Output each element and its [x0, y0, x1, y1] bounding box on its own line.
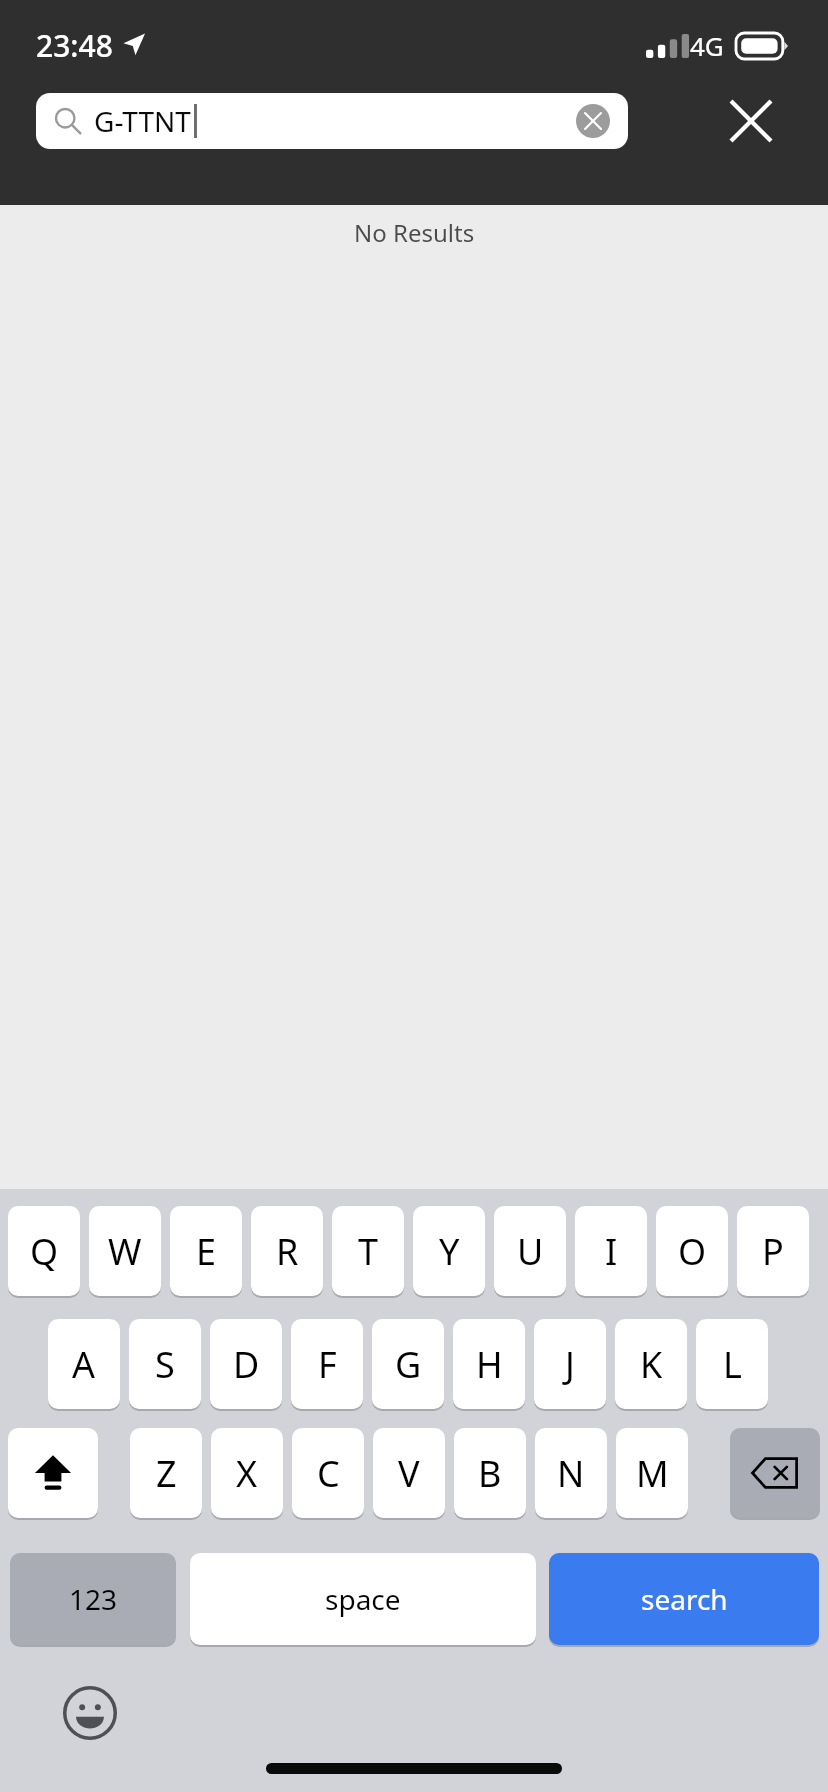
button[interactable]: Z — [130, 1428, 202, 1518]
button[interactable]: T — [332, 1206, 404, 1296]
staticText: B — [478, 1449, 502, 1498]
staticText: Y — [439, 1227, 460, 1276]
staticText: F — [318, 1340, 337, 1389]
staticText: A — [72, 1340, 96, 1389]
button[interactable]: S — [129, 1319, 201, 1409]
button[interactable]: L — [696, 1319, 768, 1409]
button[interactable]: space — [190, 1553, 536, 1645]
staticText: 123 — [69, 1580, 118, 1618]
staticText: O — [678, 1227, 707, 1276]
button[interactable]: Q — [8, 1206, 80, 1296]
button[interactable]: U — [494, 1206, 566, 1296]
staticText: H — [476, 1340, 503, 1389]
button[interactable]: I — [575, 1206, 647, 1296]
button[interactable]: X — [211, 1428, 283, 1518]
staticText: No Results — [354, 216, 475, 249]
staticText: V — [398, 1449, 420, 1498]
button[interactable]: D — [210, 1319, 282, 1409]
button[interactable]: Emoji keyboard — [56, 1679, 124, 1747]
button[interactable]: V — [373, 1428, 445, 1518]
button[interactable]: Close search — [714, 84, 788, 158]
button[interactable]: A — [48, 1319, 120, 1409]
button[interactable]: K — [615, 1319, 687, 1409]
button[interactable]: Y — [413, 1206, 485, 1296]
button[interactable]: F — [291, 1319, 363, 1409]
button[interactable]: Clear text — [576, 104, 610, 138]
button[interactable]: E — [170, 1206, 242, 1296]
staticText: G — [395, 1340, 422, 1389]
staticText: N — [557, 1449, 585, 1498]
button[interactable]: 123 — [10, 1553, 176, 1645]
staticText: W — [108, 1227, 142, 1276]
staticText: P — [762, 1227, 784, 1276]
button[interactable]: O — [656, 1206, 728, 1296]
button[interactable]: Backspace — [730, 1428, 820, 1518]
staticText: K — [640, 1340, 663, 1389]
staticText: D — [233, 1340, 260, 1389]
staticText: C — [317, 1449, 340, 1498]
staticText: R — [276, 1227, 299, 1276]
staticText: Q — [30, 1227, 59, 1276]
staticText: E — [196, 1227, 217, 1276]
staticText: 23:48 — [36, 25, 113, 66]
button[interactable]: Shift — [8, 1428, 98, 1518]
staticText: X — [236, 1449, 258, 1498]
staticText: M — [636, 1449, 669, 1498]
staticText: L — [723, 1340, 742, 1389]
staticText: J — [565, 1340, 575, 1389]
staticText: S — [155, 1340, 175, 1389]
staticText: 4G — [690, 28, 724, 63]
button[interactable]: B — [454, 1428, 526, 1518]
staticText: T — [358, 1227, 379, 1276]
button[interactable]: N — [535, 1428, 607, 1518]
button[interactable]: M — [616, 1428, 688, 1518]
button[interactable]: G-TTNT — [36, 93, 628, 149]
button[interactable]: H — [453, 1319, 525, 1409]
button[interactable]: J — [534, 1319, 606, 1409]
button[interactable]: R — [251, 1206, 323, 1296]
button[interactable]: G — [372, 1319, 444, 1409]
staticText: space — [325, 1580, 401, 1618]
staticText: U — [517, 1227, 544, 1276]
button[interactable]: search — [549, 1553, 819, 1645]
staticText: search — [641, 1580, 728, 1618]
staticText: Z — [156, 1449, 177, 1498]
button[interactable]: C — [292, 1428, 364, 1518]
staticText: I — [605, 1227, 618, 1276]
button[interactable]: W — [89, 1206, 161, 1296]
button[interactable]: P — [737, 1206, 809, 1296]
staticText: G-TTNT — [94, 102, 191, 140]
